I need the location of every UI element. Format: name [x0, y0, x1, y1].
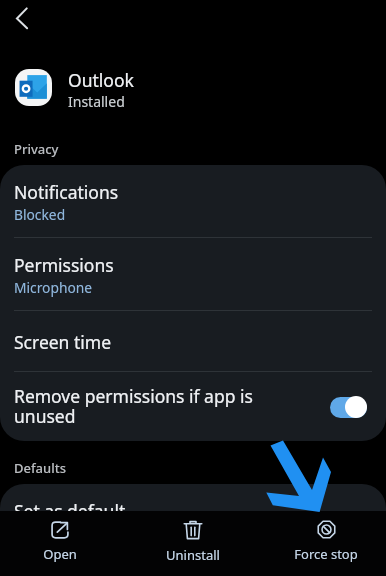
- staticText: Uninstall: [166, 546, 220, 564]
- staticText: Remove permissions if app is unused: [14, 384, 253, 429]
- button[interactable]: Remove permissions if app is unused: [0, 372, 386, 441]
- staticText: Set as default: [14, 499, 126, 523]
- staticText: Installed: [68, 92, 125, 111]
- staticText: Screen time: [14, 330, 112, 354]
- staticText: Defaults: [14, 459, 67, 477]
- staticText: Notifications: [14, 180, 119, 204]
- staticText: Outlook: [68, 68, 134, 92]
- staticText: Privacy: [14, 140, 59, 158]
- staticText: Open: [43, 545, 77, 563]
- button[interactable]: Remove permissions if app is unused togg…: [330, 396, 367, 418]
- button[interactable]: Screen time: [0, 311, 386, 372]
- staticText: Microphone: [14, 278, 93, 297]
- button[interactable]: Open: [20, 511, 100, 576]
- staticText: Permissions: [14, 253, 114, 277]
- button[interactable]: Set as default: [0, 484, 386, 538]
- button[interactable]: Permissions: [0, 238, 386, 311]
- staticText: Force stop: [294, 545, 358, 563]
- button[interactable]: Back: [10, 3, 38, 31]
- staticText: Blocked: [14, 205, 66, 224]
- button[interactable]: Force stop: [286, 511, 366, 576]
- button[interactable]: Notifications: [0, 165, 386, 238]
- button[interactable]: Uninstall: [153, 511, 233, 576]
